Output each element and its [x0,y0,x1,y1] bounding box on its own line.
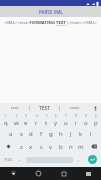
staticText: x [29,143,33,151]
staticText: y [54,119,58,127]
button[interactable]: 4 [31,114,41,127]
staticText: j [70,130,72,138]
staticText: 1 [5,114,7,118]
staticText: 7 [65,114,67,118]
button[interactable]: 9 [81,114,91,127]
staticText: g [49,130,53,138]
staticText: w [14,119,19,127]
staticText: 5 [46,114,48,118]
button[interactable]: 7 [61,114,71,127]
button[interactable]: 0 [91,114,101,127]
button[interactable]: Recents [51,167,76,180]
button[interactable]: 2 [11,114,21,127]
button[interactable]: text [0,103,29,113]
staticText: c [40,143,43,151]
staticText: 0 [95,114,97,118]
button[interactable]: 3 [21,114,31,127]
button[interactable]: s [16,127,26,140]
staticText: , [19,156,21,163]
staticText: d [29,130,33,138]
button[interactable]: m [76,140,86,153]
button[interactable]: j [66,127,76,140]
staticText: k [79,130,83,138]
staticText: f [40,130,43,138]
staticText: 8 [75,114,77,118]
button[interactable]: g [46,127,56,140]
staticText: u [64,119,68,127]
staticText: text [11,105,19,111]
button[interactable]: TEST [30,103,59,113]
button[interactable]: z [16,140,26,153]
staticText: 6 [55,114,57,118]
button[interactable]: 5 [41,114,51,127]
staticText: r [35,119,38,127]
staticText: TEST [39,105,51,112]
staticText: . [78,156,80,163]
staticText: m [78,143,84,151]
staticText: texts [70,105,80,111]
staticText: 2 [16,114,18,118]
staticText: h [59,130,63,138]
button[interactable]: , [15,153,25,166]
button[interactable]: Enter [88,155,97,164]
button[interactable]: b [56,140,66,153]
staticText: 3 [25,114,27,118]
button[interactable]: c [36,140,46,153]
button[interactable]: texts [60,103,89,113]
staticText: q [4,119,8,127]
staticText: a [9,130,13,138]
button[interactable]: Hide keyboard [0,167,26,180]
button[interactable]: 8 [71,114,81,127]
button[interactable]: v [46,140,56,153]
button[interactable]: h [56,127,66,140]
staticText: b [59,143,63,151]
button[interactable]: . [74,153,84,166]
staticText: l [90,130,92,138]
button[interactable]: Switch keyboard [76,167,101,180]
staticText: z [20,143,23,151]
staticText: 9 [85,114,87,118]
staticText: 4 [36,114,38,118]
staticText: ?123 [4,157,12,162]
button[interactable]: k [76,127,86,140]
staticText: p [94,119,98,127]
button[interactable]: Home [26,167,51,180]
button[interactable]: a [6,127,16,140]
button[interactable]: f [36,127,46,140]
staticText: t [45,119,48,127]
staticText: n [69,143,73,151]
button[interactable]: PARSE XML [33,7,69,17]
staticText: i [75,119,77,127]
staticText: <XML><text>FORMATING TEXT|</text></XML> [4,20,97,26]
button[interactable]: 6 [51,114,61,127]
staticText: e [24,119,28,127]
button[interactable]: Voice input [89,103,101,113]
staticText: o [84,119,88,127]
button[interactable]: x [26,140,36,153]
button[interactable]: n [66,140,76,153]
button[interactable]: d [26,127,36,140]
button[interactable]: 1 [0,114,11,127]
button[interactable]: l [86,127,96,140]
staticText: s [20,130,23,138]
staticText: v [49,143,53,151]
button[interactable]: Shift [0,140,16,153]
button[interactable]: Backspace [86,140,101,153]
staticText: PARSE XML [39,9,63,15]
button[interactable]: ?123 [0,153,15,166]
